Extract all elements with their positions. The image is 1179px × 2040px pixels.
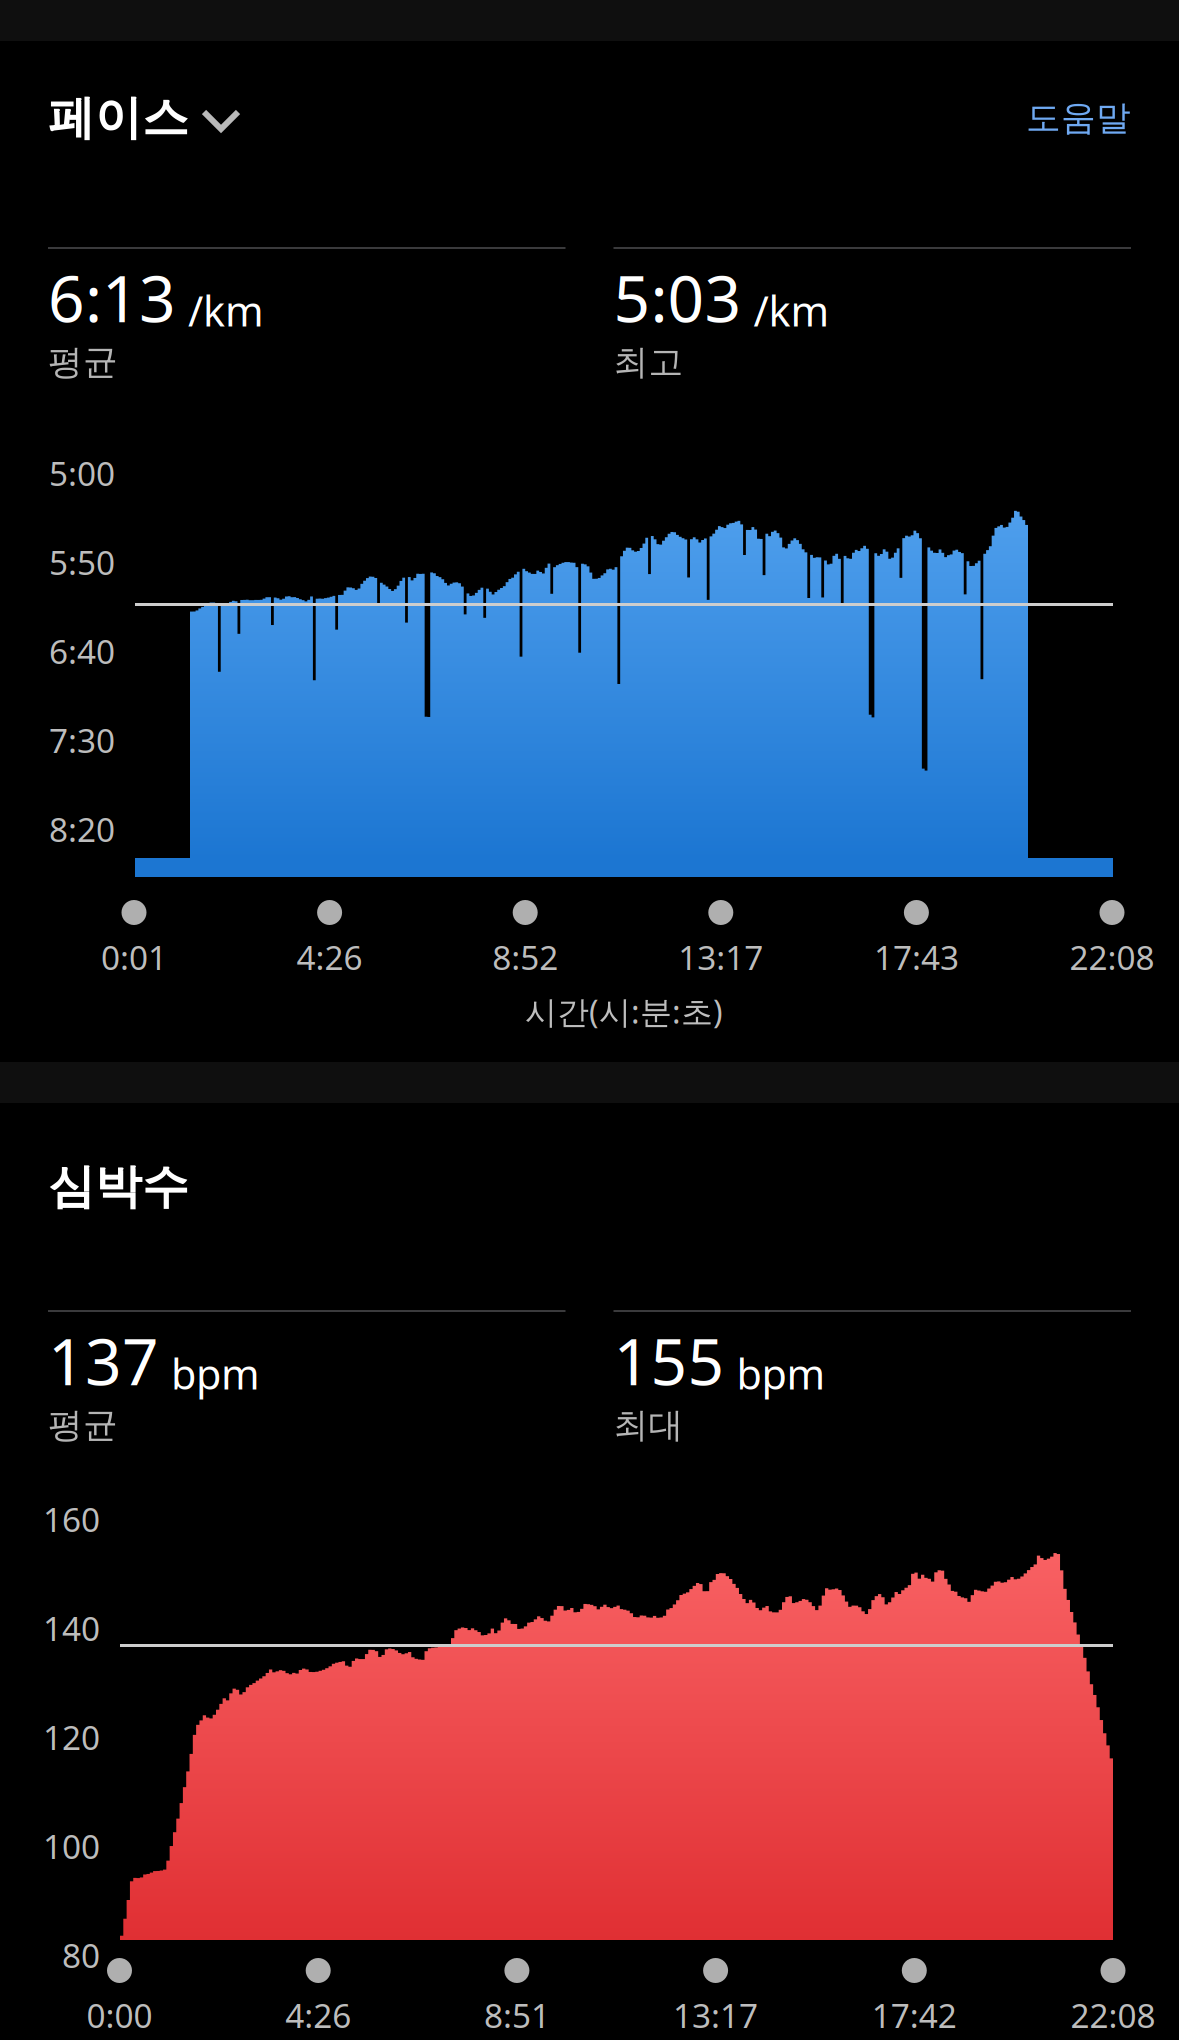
staticText: 6:40: [49, 629, 115, 673]
staticText: 6:13: [48, 255, 176, 340]
staticText: 137: [48, 1318, 159, 1403]
staticText: /km: [753, 283, 829, 338]
staticText: 7:30: [49, 718, 115, 762]
staticText: 4:26: [285, 1993, 351, 2037]
staticText: 평균: [48, 341, 118, 384]
staticText: 120: [43, 1715, 100, 1759]
staticText: 140: [43, 1606, 100, 1650]
staticText: 시간(시:분:초): [525, 990, 723, 1032]
button[interactable]: 페이스: [48, 89, 241, 147]
staticText: bpm: [171, 1346, 260, 1401]
button[interactable]: 도움말: [1026, 97, 1131, 139]
staticText: 100: [43, 1824, 100, 1868]
staticText: 도움말: [1026, 97, 1131, 139]
staticText: 8:20: [49, 807, 115, 851]
staticText: bpm: [736, 1346, 825, 1401]
staticText: 17:42: [872, 1993, 957, 2037]
staticText: 5:03: [613, 255, 741, 340]
staticText: 155: [613, 1318, 724, 1403]
staticText: 8:52: [492, 935, 558, 979]
staticText: 5:00: [49, 451, 115, 495]
staticText: 0:00: [86, 1993, 152, 2037]
staticText: /km: [188, 283, 264, 338]
staticText: 심박수: [48, 1158, 189, 1215]
staticText: 160: [43, 1497, 100, 1541]
staticText: 13:17: [673, 1993, 758, 2037]
staticText: 최대: [613, 1404, 683, 1447]
staticText: 페이스: [48, 89, 189, 147]
staticText: 17:43: [874, 935, 959, 979]
staticText: 80: [62, 1933, 100, 1977]
staticText: 4:26: [297, 935, 363, 979]
staticText: 13:17: [678, 935, 763, 979]
staticText: 최고: [613, 341, 683, 384]
staticText: 8:51: [484, 1993, 550, 2037]
staticText: 22:08: [1069, 935, 1154, 979]
staticText: 5:50: [49, 540, 115, 584]
staticText: 평균: [48, 1404, 118, 1447]
staticText: 22:08: [1070, 1993, 1155, 2037]
staticText: 0:01: [101, 935, 167, 979]
